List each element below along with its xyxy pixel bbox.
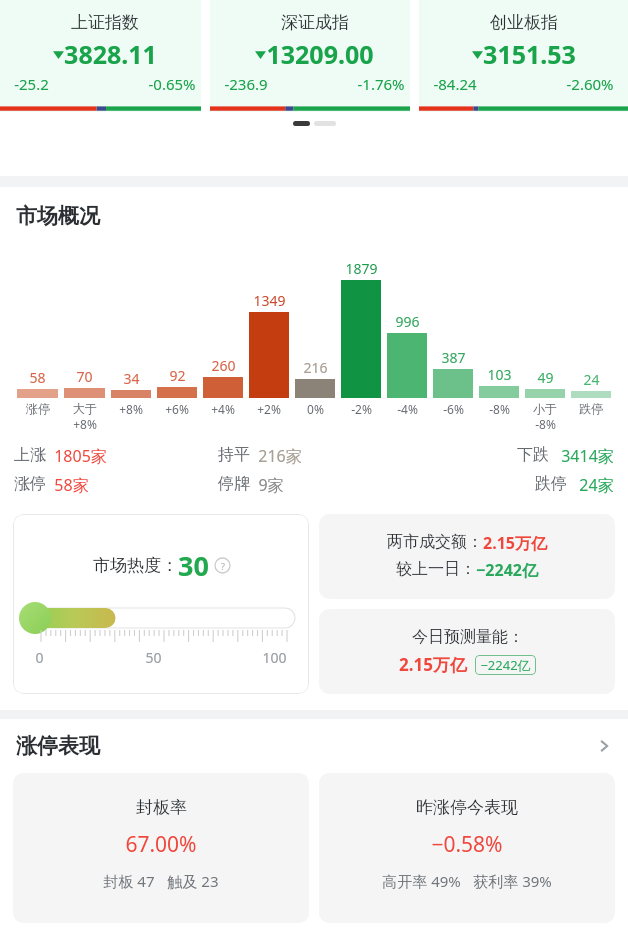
staticText: ? [221,560,225,572]
staticText: +8% [119,401,143,417]
staticText: +8% [73,416,97,432]
staticText: -2% [351,401,372,417]
staticText: 34 [123,369,140,388]
staticText: 两市成交额： [387,532,483,552]
button[interactable]: 今日预测量能： [319,609,615,694]
staticText: 3414家 [561,445,614,467]
staticText: 大于 [73,401,97,416]
staticText: 92 [169,366,186,385]
staticText: 较上一日： [396,559,476,579]
button[interactable]: 昨涨停今表现 [319,773,615,923]
staticText: 1805家 [54,445,107,467]
staticText: 58 [29,368,46,387]
button[interactable]: 帮助 [215,558,230,573]
staticText: 获利率 39% [473,871,552,891]
staticText: 103 [487,365,512,384]
staticText: 2.15万亿 [483,532,547,554]
staticText: +4% [211,401,235,417]
button[interactable]: 封板率 [13,773,309,923]
staticText: 上证指数 [71,12,139,33]
staticText: −2242亿 [480,656,531,674]
staticText: 涨停 [14,474,46,494]
staticText: 0% [307,401,324,417]
staticText: −0.58% [431,830,503,859]
staticText: 小于 [533,401,557,416]
staticText: 9家 [258,474,284,496]
staticText: 1879 [345,259,378,278]
staticText: 下跌 [517,445,549,465]
staticText: −2242亿 [476,559,538,581]
staticText: 67.00% [125,830,197,859]
staticText: 50 [145,648,162,667]
staticText: 昨涨停今表现 [416,797,518,818]
button[interactable]: 市场概况 [16,203,100,229]
staticText: 封板 47 [103,871,155,891]
staticText: 49 [537,368,554,387]
staticText: -236.9 [224,74,268,94]
staticText: 996 [395,312,420,331]
staticText: 今日预测量能： [412,627,524,647]
staticText: 持平 [218,445,250,465]
staticText: 24家 [579,474,614,496]
staticText: -4% [397,401,418,417]
staticText: -1.76% [357,74,405,94]
staticText: 3828.11 [64,37,157,71]
staticText: +2% [257,401,281,417]
button[interactable]: 上证指数 [0,0,210,112]
other: 查看更多 [596,738,612,754]
staticText: 市场概况 [16,203,100,229]
staticText: 0 [35,648,44,667]
staticText: 24 [583,370,600,389]
button[interactable]: 深证成指 [210,0,419,112]
staticText: 13209.00 [266,37,374,71]
staticText: 260 [211,356,236,375]
staticText: 涨停表现 [16,733,100,759]
button[interactable]: 两市成交额： [319,514,615,599]
staticText: 停牌 [218,474,250,494]
staticText: 触及 23 [167,871,219,891]
staticText: 3151.53 [483,37,576,71]
staticText: -84.24 [433,74,477,94]
staticText: -25.2 [14,74,49,94]
staticText: 封板率 [136,797,187,818]
staticText: 387 [441,348,466,367]
button[interactable]: 创业板指 [419,0,628,112]
staticText: 2.15万亿 [399,653,467,676]
staticText: 市场热度： [93,555,178,576]
button[interactable]: 涨停表现 [0,733,628,759]
staticText: -6% [443,401,464,417]
staticText: 216家 [258,445,302,467]
staticText: 高开率 49% [382,871,461,891]
staticText: 70 [76,367,93,386]
staticText: 创业板指 [490,12,558,33]
staticText: 100 [262,648,287,667]
staticText: 216 [303,358,328,377]
staticText: 跌停 [535,474,567,494]
staticText: 深证成指 [281,12,349,33]
staticText: 上涨 [14,445,46,465]
staticText: 涨停 [26,401,50,416]
staticText: -8% [535,416,556,432]
staticText: 30 [178,547,209,584]
staticText: 跌停 [579,401,603,416]
staticText: -0.65% [148,74,196,94]
staticText: -8% [489,401,510,417]
staticText: 1349 [253,291,286,310]
staticText: -2.60% [566,74,614,94]
staticText: +6% [165,401,189,417]
staticText: 58家 [54,474,89,496]
button[interactable]: 市场热度： [13,514,309,694]
